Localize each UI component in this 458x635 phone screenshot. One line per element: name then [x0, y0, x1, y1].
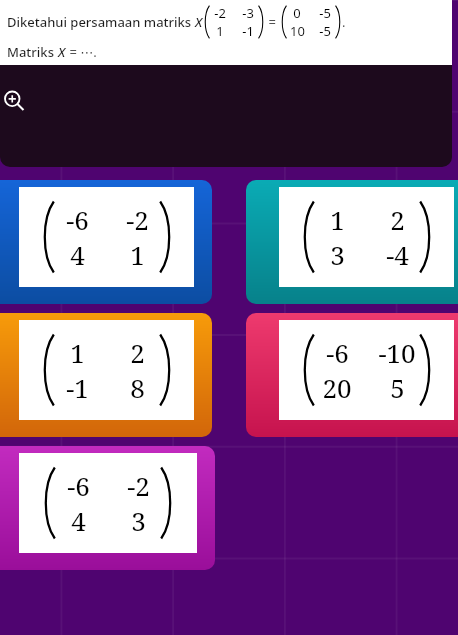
staticText: -6	[67, 468, 90, 503]
staticText: X	[195, 13, 203, 31]
staticText: -10	[378, 335, 416, 370]
button[interactable]: -6	[246, 313, 458, 437]
staticText: 2	[130, 335, 145, 370]
staticText: 20	[322, 370, 352, 405]
staticText: 4	[71, 503, 86, 538]
button[interactable]: 1	[0, 313, 212, 437]
staticText: -5	[319, 22, 331, 40]
staticText: -6	[326, 335, 349, 370]
button[interactable]: Zoom in	[0, 81, 34, 121]
button[interactable]: 1	[246, 180, 458, 304]
staticText: Diketahui persamaan matriks	[7, 13, 195, 31]
staticText: 1	[330, 202, 345, 237]
staticText: 0	[293, 4, 301, 22]
staticText: =	[265, 13, 280, 31]
staticText: -2	[126, 202, 149, 237]
staticText: 1	[130, 237, 145, 272]
staticText: 4	[70, 237, 85, 272]
staticText: -4	[386, 237, 409, 272]
staticText: -2	[214, 4, 226, 22]
staticText: -1	[242, 22, 254, 40]
button[interactable]: -6	[0, 446, 215, 570]
staticText: -3	[242, 4, 254, 22]
staticText: 8	[130, 370, 145, 405]
staticText: -2	[127, 468, 150, 503]
staticText: -1	[66, 370, 89, 405]
staticText: 1	[70, 335, 85, 370]
button[interactable]: -6	[0, 180, 212, 304]
staticText: X	[58, 43, 66, 61]
staticText: 3	[131, 503, 146, 538]
staticText: 5	[390, 370, 405, 405]
staticText: 3	[330, 237, 345, 272]
staticText: Matriks	[7, 43, 58, 61]
staticText: = ⋯.	[66, 43, 97, 61]
staticText: .	[342, 13, 346, 31]
staticText: 2	[390, 202, 405, 237]
staticText: -5	[319, 4, 331, 22]
staticText: -6	[66, 202, 89, 237]
staticText: 1	[216, 22, 224, 40]
staticText: 10	[290, 22, 305, 40]
